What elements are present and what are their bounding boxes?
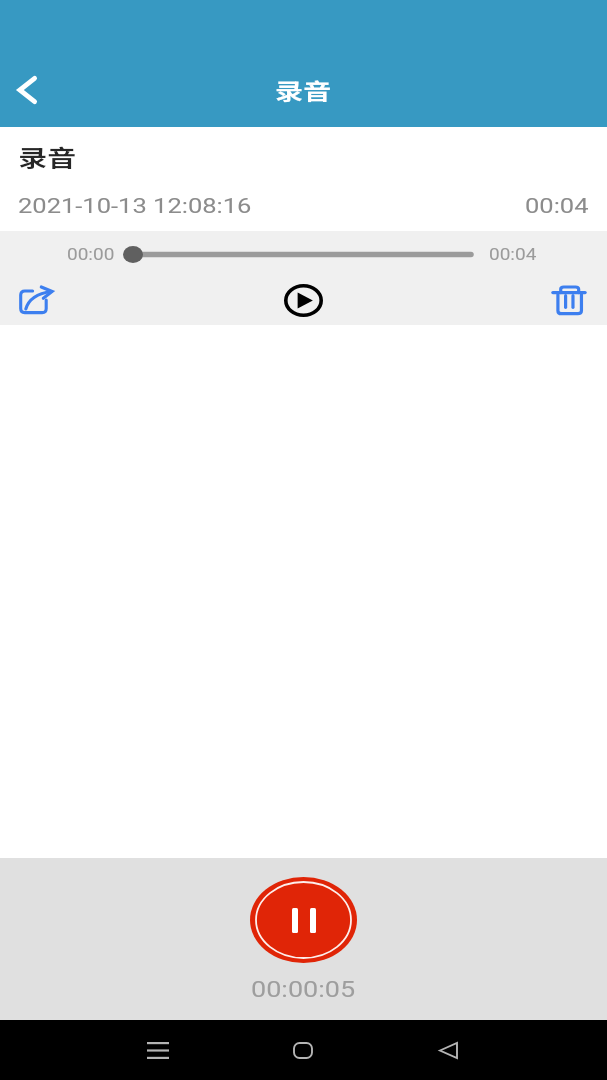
button[interactable]: Back <box>0 62 54 118</box>
staticText: 录音 <box>18 139 77 173</box>
staticText: 00:04 <box>525 193 589 218</box>
staticText: 2021-10-13 12:08:16 <box>18 193 252 218</box>
staticText: 00:04 <box>489 245 537 263</box>
staticText: 00:00 <box>67 245 115 263</box>
button[interactable]: Back <box>418 1020 478 1080</box>
button[interactable]: Play <box>275 276 331 324</box>
button[interactable]: Home <box>273 1020 333 1080</box>
button[interactable]: Share <box>8 276 64 324</box>
staticText: 00:00:05 <box>251 976 356 1002</box>
button[interactable]: Pause recording <box>250 877 357 963</box>
staticText: 录音 <box>275 74 332 108</box>
button[interactable]: Recents <box>128 1020 188 1080</box>
button[interactable]: Delete <box>541 276 597 324</box>
